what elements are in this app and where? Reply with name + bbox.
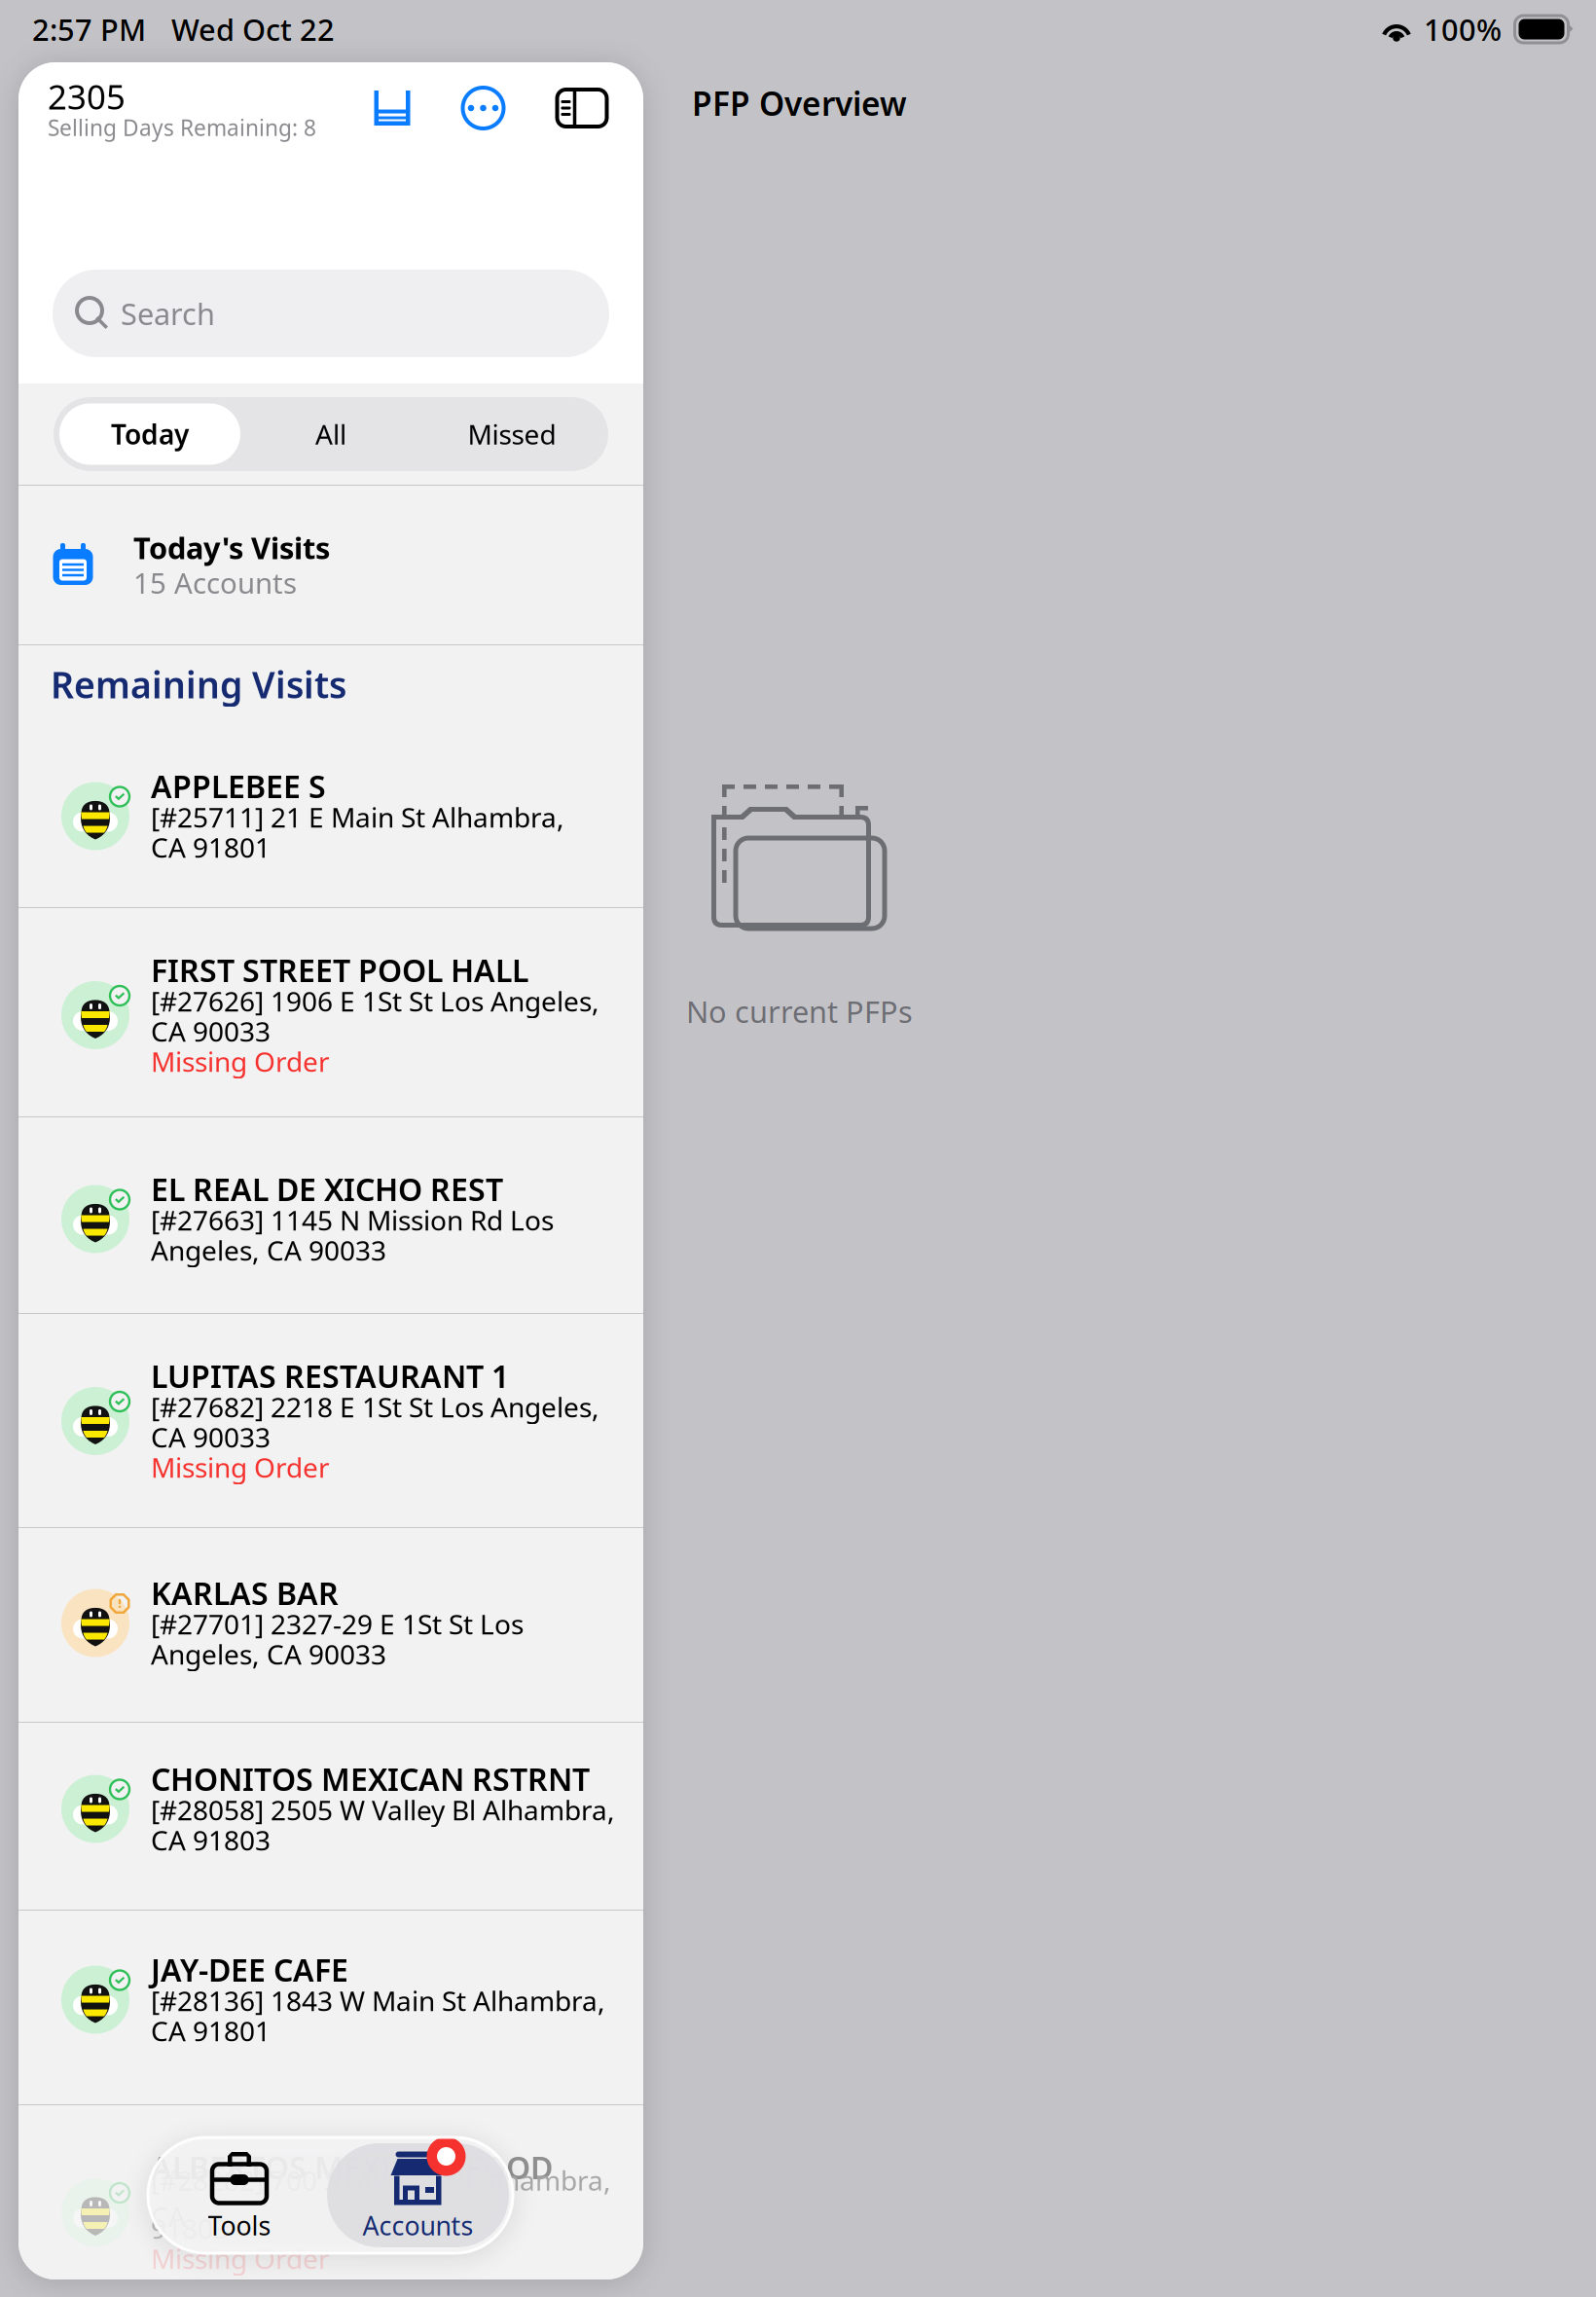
button[interactable]: Today: [59, 403, 240, 465]
button[interactable]: KARLAS BAR: [18, 1528, 643, 1722]
staticText: 2:57 PM: [32, 9, 146, 49]
button[interactable]: APPLEBEE S: [18, 711, 643, 907]
staticText: ALBERTOS MEXICAN FOOD: [151, 2146, 553, 2188]
staticText: 15 Accounts: [133, 564, 297, 602]
staticText: CA 91801: [151, 2013, 271, 2049]
staticText: LUPITAS RESTAURANT 1: [151, 1355, 509, 1396]
button[interactable]: Today's Visits: [18, 486, 643, 644]
staticText: Missing Order: [151, 2240, 330, 2277]
staticText: No current PFPs: [686, 991, 913, 1031]
staticText: KARLAS BAR: [151, 1572, 339, 1614]
button[interactable]: EL REAL DE XICHO REST: [18, 1117, 643, 1313]
button[interactable]: More options: [427, 78, 539, 138]
button[interactable]: Tools: [152, 2143, 327, 2247]
staticText: [#28136] 1843 W Main St Alhambra,: [151, 1983, 605, 2019]
staticText: CA 90033: [151, 1419, 271, 1455]
staticText: Accounts: [363, 2208, 473, 2243]
staticText: [#25711] 21 E Main St Alhambra,: [151, 799, 564, 835]
staticText: All: [315, 416, 346, 452]
staticText: [#27682] 2218 E 1St St Los Angeles,: [151, 1389, 599, 1425]
button[interactable]: Hide Sidebar: [539, 78, 625, 138]
staticText: Remaining Visits: [51, 660, 346, 708]
button[interactable]: All: [240, 403, 421, 465]
staticText: Angeles, CA 90033: [151, 1636, 386, 1672]
staticText: JAY-DEE CAFE: [151, 1949, 348, 1990]
button[interactable]: Accounts: [327, 2143, 509, 2247]
button[interactable]: Missed: [421, 402, 602, 466]
staticText: Missed: [468, 416, 556, 452]
button[interactable]: LUPITAS RESTAURANT 1: [18, 1314, 643, 1527]
button[interactable]: JAY-DEE CAFE: [18, 1911, 643, 2104]
button[interactable]: FIRST STREET POOL HALL: [18, 908, 643, 1116]
staticText: Missing Order: [151, 1043, 330, 1079]
staticText: APPLEBEE S: [151, 765, 326, 807]
staticText: 91803: [151, 2210, 229, 2246]
staticText: [#28058] 2505 W Valley Bl Alhambra,: [151, 1792, 615, 1828]
button[interactable]: Search: [53, 270, 609, 357]
staticText: Selling Days Remaining: 8: [48, 113, 316, 142]
staticText: 2305: [48, 74, 126, 119]
staticText: [#27701] 2327-29 E 1St St Los: [151, 1606, 524, 1642]
staticText: CHONITOS MEXICAN RSTRNT: [151, 1758, 590, 1799]
staticText: PFP Overview: [692, 82, 907, 125]
button[interactable]: Reports: [357, 78, 427, 138]
staticText: [#27626] 1906 E 1St St Los Angeles,: [151, 983, 599, 1019]
staticText: Wed Oct 22: [171, 9, 335, 49]
staticText: CA 90033: [151, 1013, 271, 1049]
staticText: Search: [121, 294, 215, 333]
staticText: CA 91801: [151, 829, 271, 865]
staticText: EL REAL DE XICHO REST: [151, 1168, 503, 1210]
staticText: Missing Order: [151, 1449, 330, 1485]
staticText: CA 91803: [151, 1822, 271, 1858]
staticText: [#27663] 1145 N Mission Rd Los: [151, 1202, 554, 1238]
button[interactable]: ALBERTOS MEXICAN FOOD: [18, 2105, 643, 2297]
staticText: Tools: [208, 2208, 271, 2243]
staticText: 100%: [1424, 9, 1502, 49]
staticText: FIRST STREET POOL HALL: [151, 949, 528, 991]
button[interactable]: CHONITOS MEXICAN RSTRNT: [18, 1723, 643, 1910]
staticText: Angeles, CA 90033: [151, 1232, 386, 1268]
staticText: Today's Visits: [133, 528, 330, 567]
staticText: [#28282] 700 S Atlantic Bl Alhambra, CA: [151, 2162, 611, 2234]
staticText: Today: [111, 416, 189, 452]
